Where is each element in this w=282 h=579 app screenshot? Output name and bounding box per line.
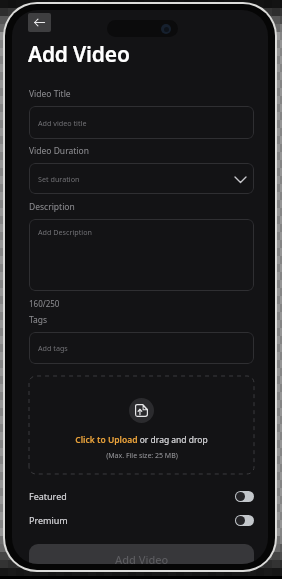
staticText: (Max. File size: 25 MB): [106, 451, 178, 461]
staticText: Set duration: [38, 174, 80, 184]
button[interactable]: Click to Upload or drag and drop: [29, 376, 254, 474]
staticText: Add tags: [38, 343, 68, 353]
button[interactable]: Premium: [29, 514, 254, 526]
button[interactable]: Add Description: [29, 219, 254, 291]
staticText: Video Title: [29, 88, 71, 100]
staticText: Add video title: [38, 118, 87, 128]
staticText: Description: [29, 201, 75, 213]
staticText: 160/250: [29, 298, 60, 309]
staticText: Add Description: [38, 227, 92, 237]
staticText: Featured: [29, 490, 67, 502]
staticText: Video Duration: [29, 145, 89, 157]
button[interactable]: Add video title: [29, 106, 254, 139]
button[interactable]: Add Video: [29, 544, 254, 564]
staticText: Tags: [29, 314, 48, 326]
staticText: Add Video: [115, 552, 169, 564]
staticText: Click to Upload or drag and drop: [75, 434, 208, 446]
button[interactable]: Back: [28, 13, 51, 32]
button[interactable]: Add tags: [29, 332, 254, 364]
button[interactable]: Set duration: [29, 163, 254, 194]
button[interactable]: Featured: [29, 490, 254, 502]
staticText: Premium: [29, 514, 68, 526]
staticText: Add Video: [28, 40, 130, 69]
